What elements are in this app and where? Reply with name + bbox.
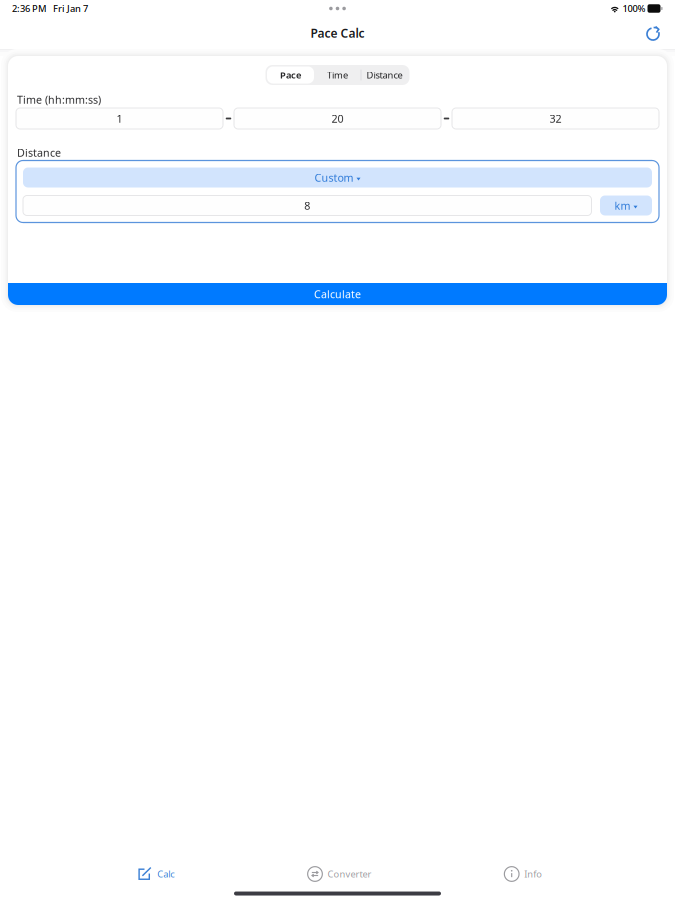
staticText: Distance <box>366 69 402 81</box>
staticText: Calculate <box>314 287 361 301</box>
staticText: Time (hh:mm:ss) <box>17 92 101 107</box>
staticText: 100% <box>622 2 645 15</box>
staticText: Info <box>524 868 542 880</box>
button[interactable]: Custom <box>23 167 652 187</box>
button[interactable]: km <box>600 195 652 215</box>
staticText: Time <box>327 69 348 81</box>
button[interactable]: Time <box>314 66 361 83</box>
button[interactable]: Info <box>431 861 615 887</box>
staticText: Calc <box>157 868 174 880</box>
staticText: Pace Calc <box>310 25 364 41</box>
staticText: Distance <box>17 145 61 160</box>
staticText: 2:36 PM <box>12 2 47 15</box>
button[interactable]: Converter <box>248 861 431 887</box>
button[interactable]: Distance <box>361 66 408 83</box>
staticText: 8 <box>304 198 310 213</box>
staticText: km <box>614 198 630 213</box>
button[interactable]: Calc <box>64 861 248 887</box>
staticText: 20 <box>331 111 343 126</box>
staticText: 1 <box>116 111 122 126</box>
staticText: Pace <box>280 69 301 81</box>
button[interactable]: Calculate <box>8 283 667 305</box>
staticText: 32 <box>549 111 561 126</box>
button[interactable]: Pace <box>267 66 314 83</box>
staticText: Custom <box>314 170 353 185</box>
staticText: Converter <box>327 868 371 880</box>
staticText: Fri Jan 7 <box>53 2 88 15</box>
button[interactable]: Reset <box>638 18 668 48</box>
